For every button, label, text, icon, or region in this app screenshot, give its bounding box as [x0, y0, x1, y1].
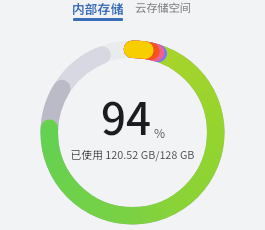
staticText: % [154, 124, 166, 141]
button[interactable]: 内部存储 [69, 0, 127, 21]
staticText: 云存储空间 [135, 0, 191, 15]
staticText: 94 [101, 84, 152, 148]
button[interactable]: 云存储空间 [132, 0, 194, 15]
staticText: 已使用 120.52 GB/128 GB [0, 146, 265, 162]
staticText: 内部存储 [72, 0, 124, 18]
